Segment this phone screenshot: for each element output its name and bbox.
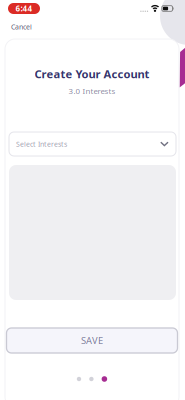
button[interactable]: SAVE	[6, 328, 177, 353]
staticText: Create Your Account	[34, 66, 149, 82]
staticText: SAVE	[81, 334, 103, 347]
staticText: 6:44	[15, 3, 32, 14]
staticText: Cancel	[11, 22, 32, 31]
button[interactable]: Select Interests	[9, 132, 176, 156]
button[interactable]: Cancel	[0, 17, 43, 36]
staticText: 3.0 Interests	[68, 86, 115, 96]
staticText: Select Interests	[16, 139, 67, 149]
